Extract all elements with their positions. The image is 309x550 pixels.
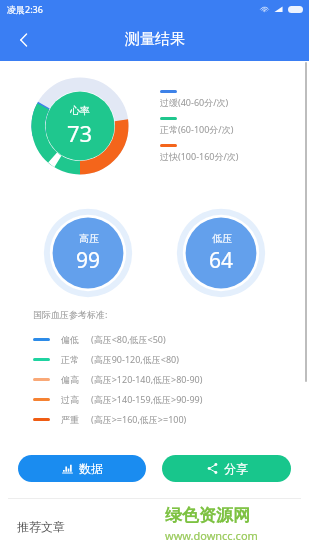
staticText: 正常 [61,354,91,365]
staticText: 推荐文章 [17,519,65,534]
button[interactable]: 分享 [162,455,291,482]
button[interactable]: 数据 [18,455,146,482]
staticText: 过缓(40-60分/次) [160,96,229,108]
staticText: 国际血压参考标准: [33,308,108,320]
staticText: (高压>140-159,低压>90-99) [91,393,203,405]
staticText: 数据 [79,461,103,476]
staticText: 偏低 [61,334,91,345]
staticText: 分享 [224,461,248,476]
staticText: 绿色资源网 [165,505,250,526]
staticText: 凌晨2:36 [7,3,43,15]
staticText: 严重 [61,414,91,425]
staticText: 心率 [70,104,90,117]
staticText: (高压<80,低压<50) [91,333,166,345]
staticText: 测量结果 [125,30,185,49]
staticText: www.downcc.com [165,528,258,543]
staticText: 99 [76,246,101,275]
staticText: (高压>120-140,低压>80-90) [91,373,203,385]
staticText: 64 [209,246,234,275]
staticText: 过高 [61,394,91,405]
staticText: 73 [67,118,93,148]
staticText: 过快(100-160分/次) [160,150,239,162]
button[interactable]: Back [8,24,40,56]
staticText: (高压>=160,低压>=100) [91,413,187,425]
staticText: 偏高 [61,374,91,385]
staticText: 正常(60-100分/次) [160,123,234,135]
staticText: 低压 [212,232,232,245]
staticText: (高压90-120,低压<80) [91,353,179,365]
staticText: 高压 [79,232,99,245]
